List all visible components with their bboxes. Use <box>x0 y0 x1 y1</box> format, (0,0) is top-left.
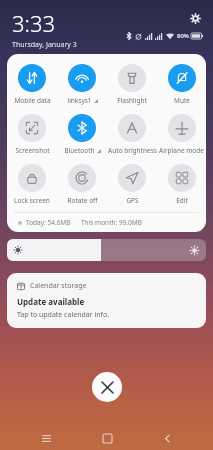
button[interactable]: GPS <box>107 163 157 206</box>
button[interactable]: Mute <box>157 63 206 106</box>
button[interactable]: Mobile data <box>7 63 57 106</box>
staticText: Bluetooth <box>64 146 95 155</box>
button[interactable]: linksys1 <box>57 63 107 106</box>
staticText: Calendar storage <box>30 281 87 291</box>
staticText: Screenshot <box>15 146 50 155</box>
button[interactable]: Screenshot <box>7 113 57 156</box>
staticText: Lock screen <box>14 196 50 205</box>
staticText: 80% <box>177 32 189 40</box>
staticText: Mute <box>174 96 190 105</box>
button[interactable]: Brightness <box>7 239 206 261</box>
button[interactable]: Home <box>92 426 122 450</box>
button[interactable]: Flashlight <box>107 63 157 106</box>
staticText: 3:33 <box>12 8 56 38</box>
button[interactable]: Recents <box>31 426 61 450</box>
staticText: Thursday, January 3 <box>12 40 77 50</box>
button[interactable]: Lock screen <box>7 163 57 206</box>
button[interactable]: Airplane mode <box>157 113 206 156</box>
staticText: Today: 54.6MB <box>26 218 71 227</box>
staticText: Rotate off <box>67 196 98 205</box>
button[interactable]: Close <box>92 372 122 402</box>
button[interactable]: Rotate off <box>57 163 107 206</box>
button[interactable]: Edit <box>157 163 206 206</box>
button[interactable]: Auto brightness <box>107 113 157 156</box>
button[interactable]: Bluetooth <box>57 113 107 156</box>
button[interactable]: Settings <box>187 10 203 26</box>
staticText: Airplane mode <box>159 146 204 155</box>
staticText: This month: 99.0MB <box>81 218 142 227</box>
staticText: Flashlight <box>117 96 147 105</box>
staticText: Edit <box>176 196 188 205</box>
staticText: Update available <box>17 296 85 307</box>
staticText: Auto brightness <box>108 146 157 155</box>
staticText: linksys1 <box>67 96 92 105</box>
button[interactable]: Calendar storage <box>7 273 206 328</box>
staticText: GPS <box>126 196 139 205</box>
button[interactable]: Back <box>152 426 182 450</box>
staticText: Mobile data <box>14 96 51 105</box>
staticText: Tap to update calendar info. <box>17 310 110 320</box>
